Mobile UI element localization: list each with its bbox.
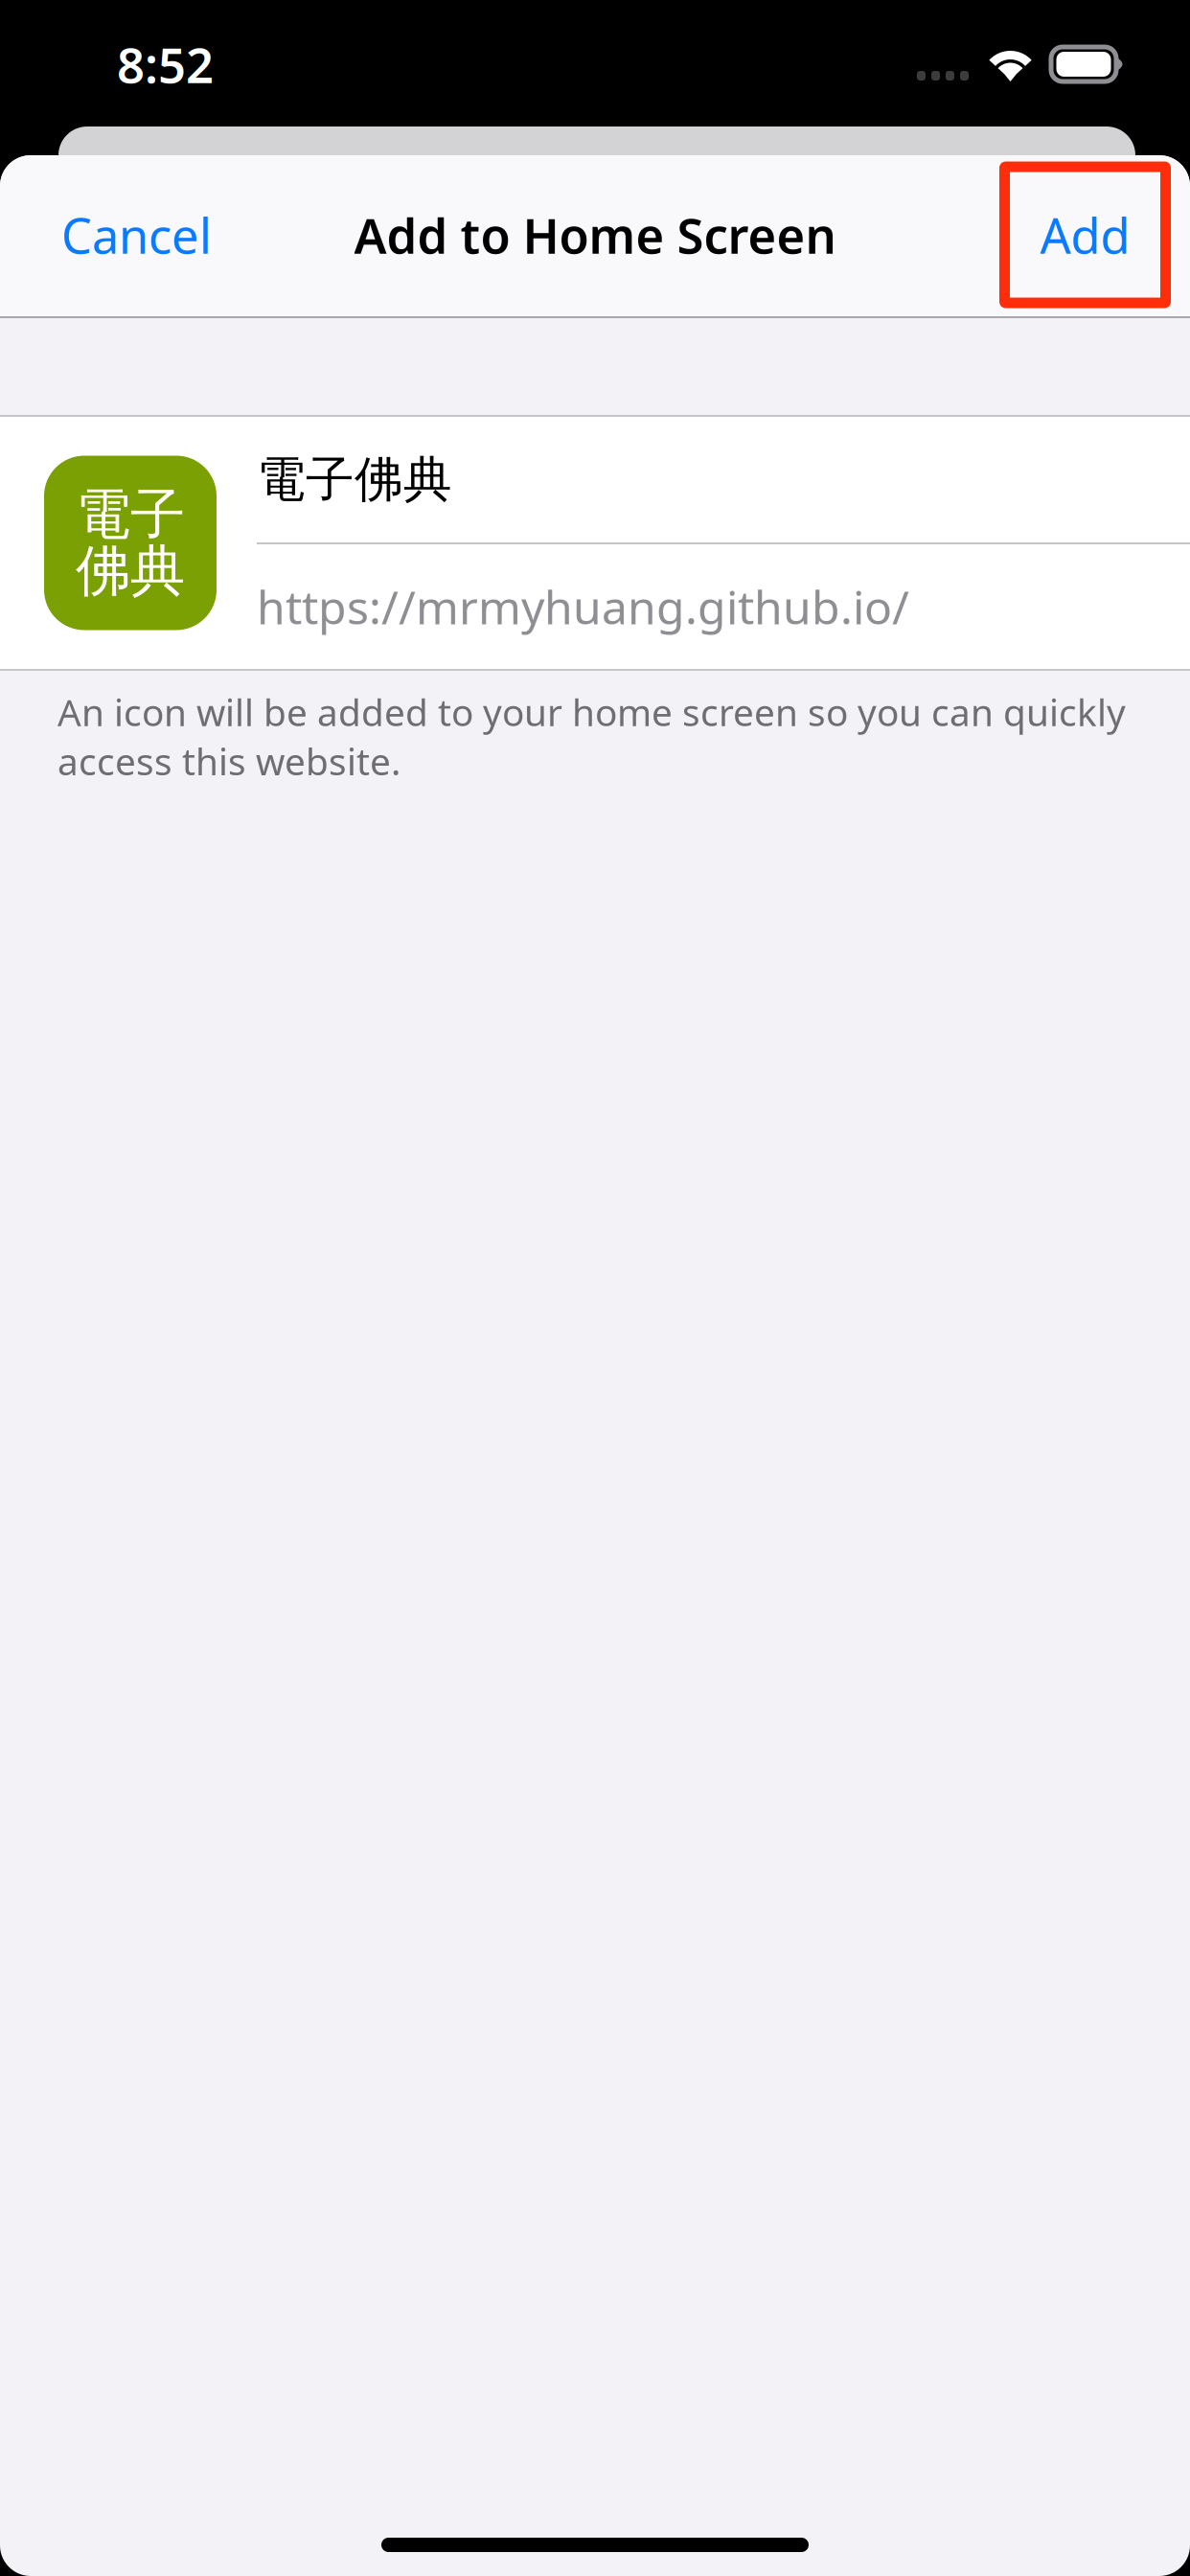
button[interactable]: 電子佛典 (257, 417, 1190, 542)
button[interactable]: Cancel (0, 155, 245, 314)
button[interactable]: Add (999, 155, 1171, 314)
staticText: Add to Home Screen (354, 203, 836, 267)
staticText: Cancel (61, 203, 212, 267)
staticText: 佛典 (76, 537, 185, 605)
staticText: An icon will be added to your home scree… (57, 687, 1126, 786)
button[interactable]: https://mrmyhuang.github.io/ (257, 544, 1190, 669)
staticText: 電子佛典 (257, 450, 452, 509)
staticText: 8:52 (117, 32, 214, 97)
staticText: https://mrmyhuang.github.io/ (257, 576, 909, 637)
staticText: Add (1040, 203, 1130, 267)
staticText: 電子 (76, 481, 185, 548)
